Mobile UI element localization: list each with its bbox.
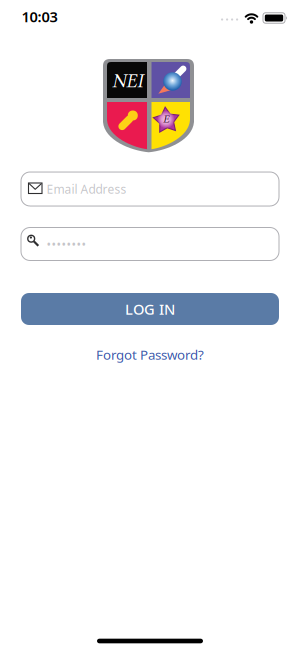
staticText: E <box>163 112 169 125</box>
staticText: Email Address <box>46 181 126 197</box>
staticText: NEI <box>112 69 143 92</box>
staticText: LOG IN <box>125 299 175 319</box>
staticText: •••••••• <box>46 236 86 252</box>
staticText: Forgot Password? <box>96 346 204 363</box>
button[interactable]: Forgot Password? <box>96 346 204 363</box>
staticText: 10:03 <box>21 7 57 26</box>
button[interactable]: LOG IN <box>21 293 279 325</box>
